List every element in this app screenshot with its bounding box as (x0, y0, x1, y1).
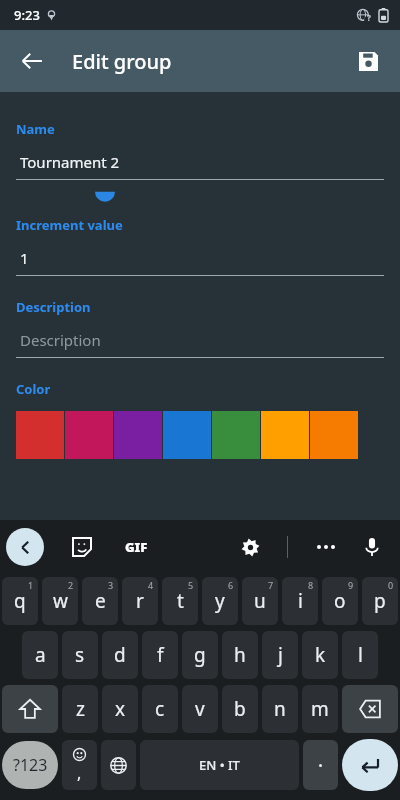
staticText: ? (367, 12, 371, 23)
button[interactable]: g (182, 631, 218, 679)
staticText: q (14, 588, 26, 614)
button[interactable]: l (342, 631, 378, 679)
staticText: Name (16, 120, 55, 138)
staticText: 9:23 (14, 6, 40, 24)
staticText: 8 (308, 579, 314, 591)
button[interactable]: e (82, 577, 118, 625)
button[interactable]: u (242, 577, 278, 625)
button[interactable]: x (102, 685, 138, 733)
button[interactable]: More options (306, 527, 346, 567)
staticText: v (195, 696, 205, 722)
staticText: i (298, 588, 303, 614)
button[interactable]: ?123 (2, 741, 58, 789)
button[interactable]: f (142, 631, 178, 679)
button[interactable]: n (262, 685, 298, 733)
staticText: w (53, 588, 68, 614)
button[interactable]: Tournament 2 (16, 152, 384, 180)
button[interactable]: GIF (114, 525, 158, 569)
staticText: 2 (68, 579, 74, 591)
button[interactable]: s (62, 631, 98, 679)
button[interactable]: t (162, 577, 198, 625)
staticText: g (194, 642, 206, 668)
staticText: EN • IT (199, 756, 240, 774)
button[interactable]: Stickers (62, 527, 102, 567)
button[interactable]: Voice input (352, 527, 392, 567)
staticText: 7 (268, 579, 274, 591)
button[interactable]: Description (16, 330, 384, 358)
staticText: s (75, 642, 85, 668)
button[interactable]: z (62, 685, 98, 733)
button[interactable]: d (102, 631, 138, 679)
staticText: Color (16, 380, 51, 398)
staticText: 6 (228, 579, 234, 591)
staticText: u (254, 588, 266, 614)
button[interactable]: k (302, 631, 338, 679)
button[interactable]: i (282, 577, 318, 625)
staticText: r (136, 588, 144, 614)
staticText: h (234, 642, 246, 668)
button[interactable]: j (262, 631, 298, 679)
button[interactable]: w (42, 577, 78, 625)
button[interactable]: a (22, 631, 58, 679)
button[interactable]: Close toolbar (6, 528, 44, 566)
staticText: Description (20, 330, 101, 350)
staticText: 9 (348, 579, 354, 591)
staticText: Edit group (72, 48, 172, 75)
button[interactable]: p (362, 577, 398, 625)
staticText: p (374, 588, 386, 614)
staticText: , (77, 762, 82, 784)
staticText: 0 (388, 579, 394, 591)
staticText: x (115, 696, 126, 722)
staticText: 1 (20, 248, 29, 268)
staticText: k (315, 642, 326, 668)
button[interactable]: Enter (342, 739, 398, 791)
staticText: e (95, 588, 106, 614)
button[interactable]: Save (344, 37, 392, 85)
staticText: 5 (188, 579, 194, 591)
staticText: o (334, 588, 346, 614)
staticText: GIF (125, 538, 148, 556)
staticText: Increment value (16, 216, 123, 234)
button[interactable]: b (222, 685, 258, 733)
staticText: b (234, 696, 246, 722)
staticText: m (311, 696, 329, 722)
button[interactable]: v (182, 685, 218, 733)
button[interactable]: y (202, 577, 238, 625)
button[interactable]: Period (303, 740, 338, 790)
staticText: 4 (148, 579, 154, 591)
button[interactable]: q (2, 577, 38, 625)
staticText: j (278, 642, 283, 668)
button[interactable]: c (142, 685, 178, 733)
staticText: y (215, 588, 225, 614)
button[interactable]: r (122, 577, 158, 625)
button[interactable]: EN • IT (140, 740, 299, 790)
button[interactable]: Switch language (101, 740, 136, 790)
button[interactable]: h (222, 631, 258, 679)
staticText: a (35, 642, 46, 668)
button[interactable]: o (322, 577, 358, 625)
button[interactable]: m (302, 685, 338, 733)
staticText: l (358, 642, 363, 668)
staticText: c (155, 696, 165, 722)
button[interactable]: Shift (2, 685, 58, 733)
staticText: 3 (108, 579, 114, 591)
staticText: f (157, 642, 164, 668)
button[interactable]: Back (8, 37, 56, 85)
button[interactable]: Backspace (342, 685, 398, 733)
staticText: d (114, 642, 126, 668)
button[interactable]: 1 (16, 248, 384, 276)
staticText: z (76, 696, 85, 722)
staticText: 1 (28, 579, 34, 591)
staticText: ?123 (13, 754, 48, 776)
staticText: n (274, 696, 286, 722)
button[interactable]: Settings (230, 527, 270, 567)
staticText: t (177, 588, 184, 614)
button[interactable]: Emoji and comma (62, 740, 97, 790)
